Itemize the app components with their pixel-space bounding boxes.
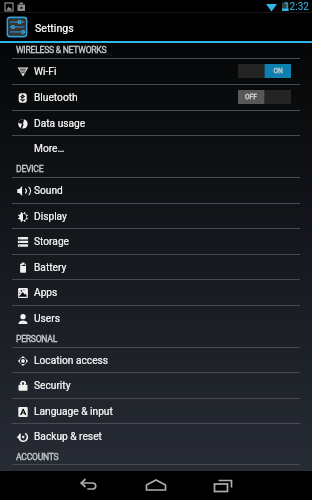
staticText: Language & input [34,406,113,418]
button[interactable]: Sound [0,178,312,204]
button[interactable]: Back [72,471,106,500]
button[interactable]: Location access [0,348,312,373]
staticText: Security [34,380,71,392]
button[interactable]: Data usage [0,111,312,136]
button[interactable]: OFF [238,90,291,104]
staticText: Apps [34,287,58,299]
staticText: Backup & reset [34,431,102,443]
button[interactable]: Bluetooth [0,85,312,111]
staticText: More… [34,143,65,155]
staticText: DEVICE [16,164,44,174]
staticText: Battery [34,262,67,274]
button[interactable]: Apps [0,280,312,306]
button[interactable]: Settings [0,13,312,43]
staticText: 12:32 [284,1,309,13]
staticText: Data usage [34,118,86,130]
button[interactable]: Language & input [0,399,312,424]
staticText: Storage [34,236,70,248]
staticText: Location access [34,355,109,367]
button[interactable]: Battery [0,255,312,280]
button[interactable]: Recent apps [206,471,240,500]
button[interactable]: Wi-Fi [0,59,312,85]
button[interactable]: More… [0,136,312,162]
staticText: ACCOUNTS [16,452,59,462]
button[interactable]: Storage [0,229,312,255]
button[interactable]: Home [139,471,173,500]
staticText: Sound [34,185,63,197]
staticText: Bluetooth [34,92,78,104]
button[interactable]: Display [0,204,312,229]
button[interactable]: Security [0,373,312,399]
staticText: Display [34,211,67,223]
button[interactable]: Users [0,306,312,332]
staticText: Settings [35,22,74,34]
staticText: ON [265,67,291,75]
button[interactable]: Backup & reset [0,424,312,450]
staticText: WIRELESS & NETWORKS [16,45,107,55]
staticText: Wi-Fi [34,66,57,78]
staticText: PERSONAL [16,334,58,344]
staticText: OFF [238,93,264,101]
button[interactable]: ON [238,64,291,78]
staticText: Users [34,313,60,325]
